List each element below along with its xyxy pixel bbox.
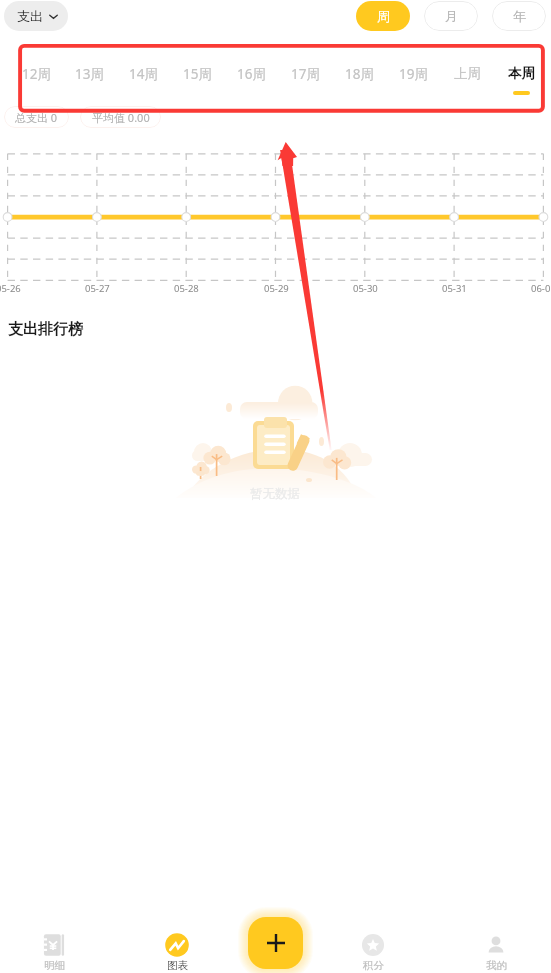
staticText: 19周 [399, 65, 428, 83]
staticText: 图表 [167, 959, 188, 972]
staticText: 14周 [129, 65, 158, 83]
staticText: 05-30 [353, 282, 378, 295]
button[interactable]: 16周 [224, 65, 278, 101]
staticText: 暂无数据 [250, 486, 300, 502]
button[interactable]: 19周 [386, 65, 440, 101]
staticText: 平均值 0.00 [92, 110, 150, 125]
staticText: 积分 [363, 959, 384, 972]
staticText: 05-31 [442, 282, 467, 295]
button[interactable]: 积分 [343, 928, 403, 973]
button[interactable]: 上周 [440, 65, 494, 101]
staticText: 周 [377, 8, 390, 24]
button[interactable]: 我的 [466, 928, 526, 973]
button[interactable]: 14周 [116, 65, 170, 101]
staticText: 05-29 [264, 282, 289, 295]
staticText: 年 [513, 8, 526, 24]
button[interactable]: 周 [356, 1, 410, 31]
staticText: 我的 [486, 959, 507, 972]
staticText: 总支出 0 [15, 110, 58, 125]
staticText: 支出排行榜 [8, 320, 83, 339]
staticText: 18周 [345, 65, 374, 83]
button[interactable]: Add [248, 917, 303, 969]
staticText: 12周 [22, 65, 51, 83]
button[interactable]: 图表 [147, 928, 207, 973]
button[interactable]: 月 [424, 1, 478, 31]
button[interactable]: 支出 [4, 1, 68, 31]
staticText: 15周 [183, 65, 212, 83]
staticText: 05-26 [0, 282, 21, 295]
staticText: 05-27 [85, 282, 110, 295]
staticText: 13周 [75, 65, 104, 83]
staticText: 17周 [291, 65, 320, 83]
button[interactable]: 本周 [494, 65, 548, 101]
button[interactable]: 明细 [24, 928, 84, 973]
button[interactable]: 17周 [278, 65, 332, 101]
staticText: 上周 [454, 65, 481, 82]
button[interactable]: 年 [492, 1, 546, 31]
button[interactable]: 平均值 0.00 [80, 106, 161, 128]
staticText: 16周 [237, 65, 266, 83]
staticText: 06-01 [531, 282, 551, 295]
button[interactable]: 12周 [9, 65, 63, 101]
button[interactable]: 13周 [62, 65, 116, 101]
staticText: 05-28 [174, 282, 199, 295]
staticText: 本周 [508, 65, 535, 82]
staticText: 支出 [17, 8, 43, 24]
staticText: 月 [445, 8, 458, 24]
staticText: 明细 [44, 959, 65, 972]
button[interactable]: 15周 [170, 65, 224, 101]
button[interactable]: 总支出 0 [4, 106, 69, 128]
button[interactable]: 18周 [332, 65, 386, 101]
